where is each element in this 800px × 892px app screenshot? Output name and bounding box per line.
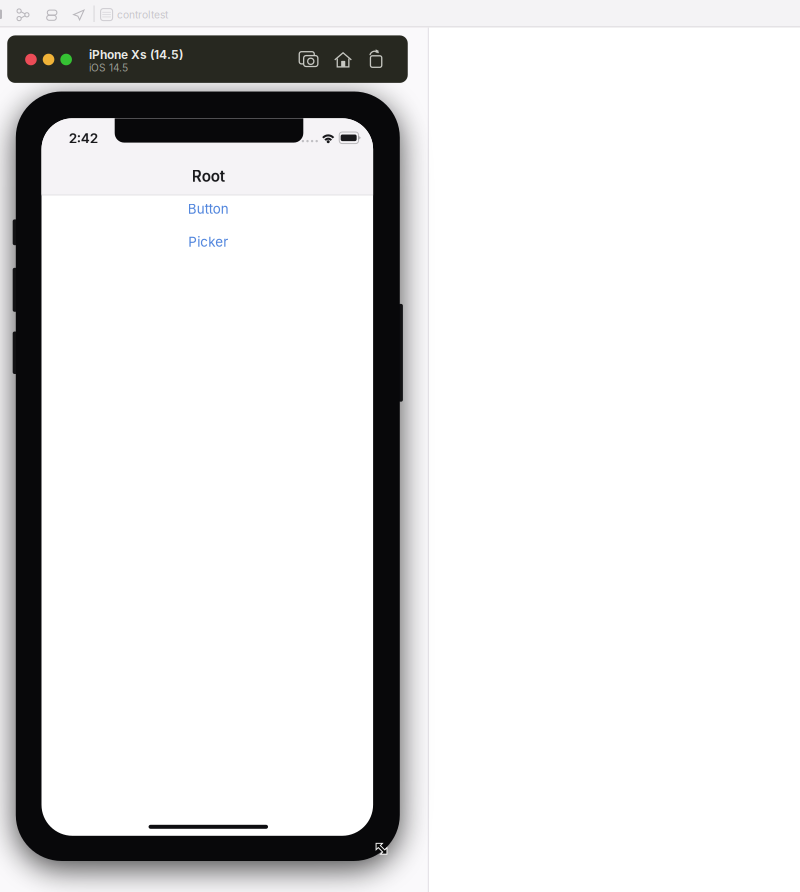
button[interactable]: Library <box>46 10 57 21</box>
button[interactable]: Send to device <box>73 9 85 20</box>
staticText: Root <box>192 167 225 185</box>
staticText: 2:42 <box>69 130 98 146</box>
staticText: iPhone Xs (14.5) <box>89 47 183 62</box>
button[interactable]: Home <box>334 52 352 68</box>
button[interactable]: Picker <box>163 230 253 253</box>
button[interactable]: Source control <box>17 9 29 21</box>
staticText: controltest <box>117 9 168 21</box>
button[interactable]: Button <box>163 197 253 220</box>
staticText: iOS 14.5 <box>89 62 128 74</box>
button[interactable]: Rotate <box>367 48 382 67</box>
staticText: Picker <box>188 234 228 250</box>
staticText: Button <box>188 201 229 217</box>
button[interactable]: Take screenshot <box>299 52 318 66</box>
